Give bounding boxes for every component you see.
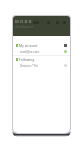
button[interactable]: Status (64, 50, 67, 53)
button[interactable]: Notifications (47, 21, 50, 24)
button[interactable]: Following (13, 57, 70, 68)
staticText: MODX (15, 19, 33, 24)
staticText: My account (19, 43, 38, 48)
button[interactable]: Add (36, 21, 39, 24)
staticText: dashboard (15, 25, 34, 29)
button[interactable]: Profile (56, 21, 59, 24)
staticText: mod@ex.com (20, 50, 40, 54)
staticText: Devices / Thi (20, 64, 38, 68)
staticText: Following (19, 57, 35, 62)
button[interactable]: Search (33, 21, 36, 24)
button[interactable]: Options (64, 64, 67, 67)
button[interactable]: My account (13, 43, 70, 54)
button[interactable]: More (63, 21, 66, 24)
